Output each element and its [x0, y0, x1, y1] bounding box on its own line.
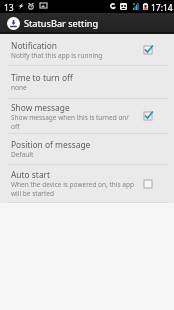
staticText: 13	[4, 2, 14, 14]
staticText: 17:14	[151, 2, 173, 14]
staticText: none	[11, 83, 27, 92]
staticText: Show message when this is turned on/ off	[11, 113, 129, 131]
staticText: Show message	[11, 102, 70, 113]
button[interactable]: Auto start	[0, 165, 174, 203]
staticText: Time to turn off	[11, 72, 73, 83]
staticText: Position of message	[11, 139, 91, 150]
button[interactable]: Time to turn off	[0, 66, 174, 99]
staticText: Notification	[11, 40, 57, 51]
button[interactable]: Notification	[0, 34, 174, 66]
staticText: StatusBar setting	[24, 17, 99, 30]
staticText: Auto start	[11, 169, 51, 180]
staticText: Default	[11, 150, 34, 159]
staticText: Notify that this app is running	[11, 51, 103, 60]
button[interactable]: Show message	[0, 99, 174, 134]
staticText: When the device is powered on, this app …	[11, 180, 134, 198]
button[interactable]: Position of message	[0, 134, 174, 165]
button[interactable]: App icon, navigate up	[7, 17, 20, 30]
